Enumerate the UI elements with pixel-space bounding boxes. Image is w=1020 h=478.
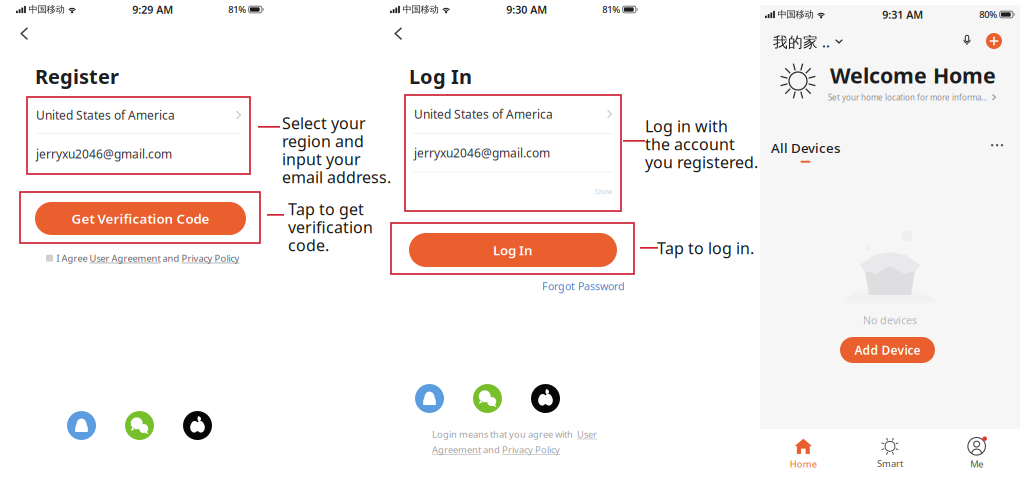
staticText: 81%	[228, 3, 246, 16]
button[interactable]: More options	[986, 139, 1008, 151]
staticText: United States of America	[414, 106, 553, 122]
staticText: Set your home location for more informa.…	[828, 92, 987, 103]
staticText: Tap to log in.	[657, 237, 754, 259]
staticText: 80%	[979, 8, 997, 21]
staticText: Log In	[409, 63, 472, 90]
button[interactable]: 我的家 ..	[770, 29, 846, 54]
staticText: 中国移动	[777, 9, 813, 20]
button[interactable]: Sign in with QQ	[415, 384, 444, 413]
staticText: Welcome Home	[830, 61, 996, 89]
staticText: Home	[790, 458, 817, 470]
button[interactable]: Sign in with QQ	[67, 411, 96, 440]
staticText: Tap to get	[288, 198, 364, 220]
staticText: Me	[970, 458, 983, 470]
staticText: 81%	[602, 3, 620, 16]
button[interactable]: Forgot Password	[542, 279, 625, 293]
button[interactable]: Log In	[409, 233, 617, 267]
staticText: Log In	[493, 241, 533, 259]
staticText: Register	[35, 63, 119, 90]
staticText: Get Verification Code	[71, 210, 209, 227]
button[interactable]: I Agree User Agreement and Privacy Polic…	[46, 252, 239, 264]
staticText: 中国移动	[402, 4, 438, 15]
button[interactable]: Sign in with Apple	[531, 384, 560, 413]
staticText: Log in with	[645, 115, 728, 137]
staticText: Add Device	[854, 342, 920, 358]
staticText: jerryxu2046@gmail.com	[36, 146, 172, 162]
staticText: Show	[595, 187, 612, 196]
staticText: 9:31 AM	[882, 7, 923, 22]
staticText: All Devices	[771, 139, 840, 157]
button[interactable]: Me	[933, 429, 1020, 477]
button[interactable]: United States of America	[27, 97, 250, 133]
staticText: Forgot Password	[542, 279, 625, 293]
button[interactable]: Smart	[847, 429, 933, 477]
staticText: Select your	[282, 112, 366, 134]
button[interactable]: Home	[760, 429, 847, 477]
button[interactable]: Voice control	[959, 31, 975, 49]
button[interactable]: Get Verification Code	[35, 202, 246, 235]
staticText: email address.	[282, 166, 391, 188]
button[interactable]: Add Device	[840, 337, 935, 363]
staticText: 9:29 AM	[132, 2, 173, 17]
staticText: the account	[645, 133, 735, 155]
staticText: Agreement and Privacy Policy	[432, 443, 560, 456]
staticText: No devices	[863, 313, 917, 327]
staticText: 9:30 AM	[506, 2, 547, 17]
staticText: Login means that you agree with User	[432, 428, 597, 440]
staticText: I Agree User Agreement and Privacy Polic…	[56, 252, 239, 264]
staticText: 中国移动	[28, 4, 64, 15]
button[interactable]: Sign in with WeChat	[473, 384, 502, 413]
staticText: Smart	[877, 457, 903, 470]
staticText: you registered.	[645, 151, 758, 173]
staticText: code.	[288, 234, 329, 256]
button[interactable]: United States of America	[405, 95, 621, 133]
staticText: United States of America	[36, 107, 175, 123]
staticText: region and	[282, 130, 364, 152]
button[interactable]: Sign in with WeChat	[125, 411, 154, 440]
staticText: input your	[282, 148, 361, 170]
button[interactable]: Add device	[986, 33, 1002, 49]
button[interactable]: Back	[11, 21, 38, 46]
staticText: verification	[288, 216, 373, 238]
staticText: 我的家 ..	[773, 32, 830, 51]
staticText: jerryxu2046@gmail.com	[414, 145, 550, 161]
button[interactable]: Sign in with Apple	[183, 411, 212, 440]
button[interactable]: Back	[385, 21, 412, 46]
